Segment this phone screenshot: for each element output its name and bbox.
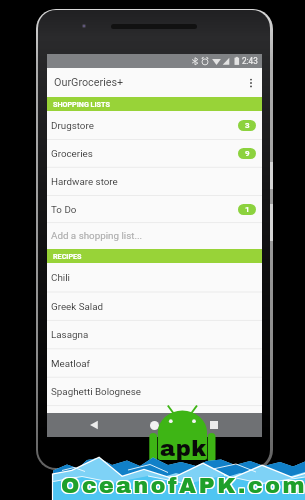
- staticText: Spaghetti Bolognese: [51, 386, 141, 397]
- staticText: OceanofAPK.com: [61, 474, 305, 498]
- button[interactable]: Chili: [47, 263, 262, 291]
- staticText: Lasagna: [51, 329, 89, 340]
- staticText: OurGroceries+: [54, 76, 124, 89]
- staticText: OceanofAPK.com: [61, 475, 305, 499]
- button[interactable]: Spaghetti Bolognese: [47, 377, 262, 405]
- button[interactable]: RECIPES: [47, 249, 262, 263]
- button[interactable]: SHOPPING LISTS: [47, 97, 262, 111]
- staticText: RECIPES: [53, 252, 82, 260]
- button[interactable]: Drugstore: [47, 111, 262, 139]
- staticText: OceanofAPK.com: [62, 475, 305, 499]
- staticText: 3: [245, 121, 250, 130]
- button[interactable]: Meatloaf: [47, 349, 262, 377]
- staticText: OceanofAPK.com: [61, 473, 305, 497]
- button[interactable]: Recents: [204, 415, 224, 435]
- staticText: Add a shopping list...: [51, 230, 143, 241]
- button[interactable]: More options: [240, 68, 262, 97]
- staticText: Meatloaf: [51, 358, 90, 369]
- staticText: Chili: [51, 272, 70, 283]
- button[interactable]: Lasagna: [47, 320, 262, 348]
- staticText: Greek Salad: [51, 301, 104, 312]
- staticText: OceanofAPK.com: [60, 474, 305, 498]
- button[interactable]: Back: [84, 415, 104, 435]
- staticText: OceanofAPK.com: [62, 474, 305, 498]
- staticText: OceanofAPK.com: [60, 473, 305, 497]
- staticText: 1: [245, 205, 250, 214]
- button[interactable]: Groceries: [47, 139, 262, 167]
- button[interactable]: Hardware store: [47, 167, 262, 195]
- staticText: To Do: [51, 204, 77, 215]
- button[interactable]: Add a shopping list...: [47, 222, 262, 249]
- button[interactable]: Home: [144, 415, 164, 435]
- staticText: OceanofAPK.com: [62, 473, 305, 497]
- staticText: 2:43: [242, 56, 258, 66]
- staticText: OceanofAPK.com: [60, 475, 305, 499]
- staticText: Drugstore: [51, 120, 94, 131]
- staticText: SHOPPING LISTS: [53, 100, 110, 108]
- staticText: 9: [245, 149, 250, 158]
- staticText: apk: [160, 436, 207, 460]
- staticText: Hardware store: [51, 176, 118, 187]
- button[interactable]: Greek Salad: [47, 292, 262, 320]
- staticText: Groceries: [51, 148, 93, 159]
- button[interactable]: To Do: [47, 195, 262, 223]
